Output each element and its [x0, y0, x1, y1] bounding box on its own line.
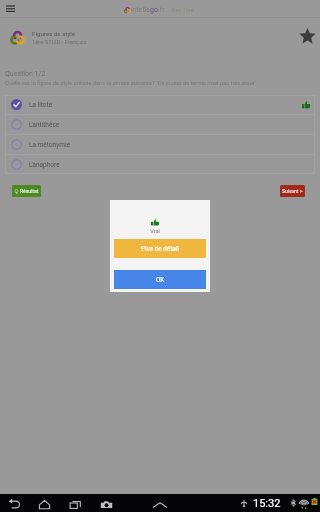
button[interactable]: Plus de détail — [114, 239, 206, 258]
button[interactable]: Résultat — [12, 185, 41, 197]
staticText: OK — [156, 276, 165, 283]
button[interactable]: Notifications — [152, 497, 168, 512]
button[interactable]: L'anaphore — [5, 155, 315, 174]
staticText: Vrai — [150, 228, 160, 234]
button[interactable]: Recents — [68, 497, 83, 512]
staticText: Question 1/2 — [5, 70, 46, 78]
staticText: L'antithèse — [29, 121, 60, 129]
staticText: Figures de style — [32, 30, 76, 37]
staticText: Résultat — [20, 188, 39, 194]
staticText: .fr — [158, 6, 165, 14]
staticText: go — [150, 6, 158, 14]
button[interactable]: Home — [37, 497, 52, 512]
staticText: La métonymie — [29, 141, 70, 149]
staticText: L'anaphore — [29, 161, 60, 169]
button[interactable]: Back — [8, 497, 21, 510]
button[interactable]: Favori — [297, 26, 317, 46]
button[interactable]: Menu — [4, 1, 20, 17]
staticText: Quelle est la figure de style utilisée d… — [5, 80, 256, 87]
button[interactable]: La litote — [5, 95, 315, 114]
staticText: intelle — [131, 6, 150, 14]
staticText: Suivant > — [282, 188, 303, 194]
staticText: La litote — [29, 101, 53, 109]
button[interactable]: Screenshot — [99, 497, 114, 512]
button[interactable]: La métonymie — [5, 135, 315, 154]
button[interactable]: L'antithèse — [5, 115, 315, 134]
staticText: 1ère STI2D - Français — [32, 39, 87, 46]
staticText: Bac 1ère — [172, 7, 194, 13]
staticText: Plus de détail — [141, 245, 179, 252]
staticText: 15:32 — [253, 497, 281, 510]
button[interactable]: Suivant > — [280, 185, 305, 197]
button[interactable]: OK — [114, 270, 206, 289]
